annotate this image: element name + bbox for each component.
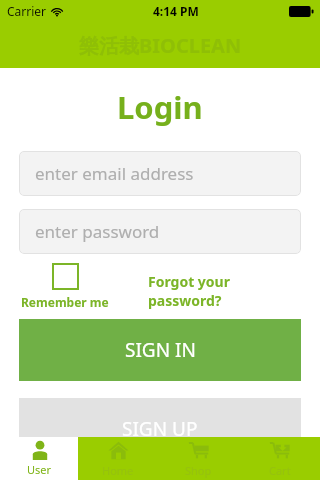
button[interactable]: enter password — [19, 209, 301, 254]
staticText: Login — [117, 86, 203, 128]
button[interactable]: Home — [78, 437, 158, 480]
button[interactable]: Remember me — [21, 263, 109, 310]
staticText: Forgot your — [148, 272, 230, 291]
staticText: SIGN IN — [125, 337, 196, 363]
staticText: Cart — [269, 463, 291, 478]
staticText: SIGN UP — [122, 416, 198, 442]
button[interactable]: User — [0, 437, 78, 480]
staticText: Carrier — [7, 3, 47, 19]
staticText: Home — [102, 463, 134, 478]
button[interactable]: Shop — [158, 437, 239, 480]
button[interactable]: SIGN UP — [19, 398, 301, 460]
button[interactable]: Forgot your — [148, 272, 230, 310]
staticText: 4:14 PM — [153, 3, 199, 19]
staticText: 樂活栽BIOCLEAN — [79, 32, 242, 59]
staticText: enter password — [35, 220, 160, 243]
staticText: User — [27, 462, 52, 477]
staticText: password? — [148, 291, 222, 310]
button[interactable]: Cart — [239, 437, 320, 480]
staticText: Shop — [185, 463, 212, 478]
staticText: Remember me — [21, 294, 109, 310]
button[interactable]: SIGN IN — [19, 319, 301, 381]
staticText: enter email address — [35, 162, 194, 185]
button[interactable]: enter email address — [19, 151, 301, 196]
